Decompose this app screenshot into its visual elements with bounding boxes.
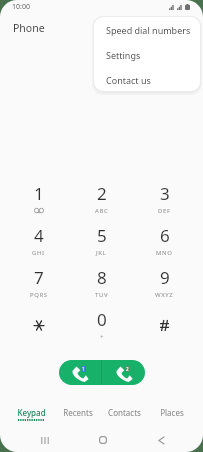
staticText: 2 [97, 182, 107, 205]
button[interactable]: Recent apps [16, 431, 74, 449]
staticText: WXYZ [155, 291, 174, 299]
staticText: ABC [95, 207, 109, 215]
staticText: Phone [13, 21, 45, 35]
button[interactable]: Home [74, 431, 132, 449]
button[interactable] [7, 308, 70, 350]
staticText: MNO [156, 249, 173, 257]
staticText: 10:00 [12, 2, 30, 12]
button[interactable]: 2 [70, 182, 133, 224]
staticText: 9 [160, 266, 170, 289]
staticText: 1 [34, 182, 44, 205]
staticText: Settings [106, 49, 141, 61]
staticText: Places [160, 407, 184, 418]
button[interactable]: Settings [94, 42, 200, 67]
button[interactable]: 1 [7, 182, 70, 224]
staticText: 6 [160, 224, 170, 247]
button[interactable]: 0 [70, 308, 133, 350]
staticText: 0 [97, 308, 107, 331]
button[interactable]: Recents [54, 403, 101, 421]
staticText: + [100, 333, 105, 341]
button[interactable]: 3 [133, 182, 196, 224]
staticText: TUV [95, 291, 109, 299]
button[interactable]: Places [148, 403, 195, 421]
staticText: 5 [97, 224, 107, 247]
staticText: PQRS [30, 291, 48, 299]
staticText: Contacts [108, 407, 141, 418]
button[interactable]: Speed dial numbers [94, 17, 200, 42]
staticText: Keypad [17, 407, 46, 418]
button[interactable]: 4 [7, 224, 70, 266]
button[interactable]: Contacts [101, 403, 148, 421]
staticText: Speed dial numbers [106, 24, 191, 36]
button[interactable]: Keypad [8, 403, 54, 421]
staticText: 4 [34, 224, 44, 247]
button[interactable]: Call with SIM 1 [59, 360, 101, 385]
button[interactable]: Call with SIM 2 [102, 360, 145, 385]
staticText: Recents [63, 407, 93, 418]
staticText: 8 [97, 266, 107, 289]
staticText: 2 [126, 366, 129, 372]
staticText: Contact us [106, 74, 151, 86]
staticText: JKL [96, 249, 107, 257]
staticText: 3 [160, 182, 170, 205]
button[interactable]: 5 [70, 224, 133, 266]
button[interactable]: 7 [7, 266, 70, 308]
button[interactable]: 9 [133, 266, 196, 308]
button[interactable]: 6 [133, 224, 196, 266]
button[interactable]: 8 [70, 266, 133, 308]
button[interactable]: Contact us [94, 67, 200, 91]
staticText: 7 [34, 266, 44, 289]
staticText: 1 [82, 366, 85, 372]
button[interactable]: Back [132, 431, 190, 449]
staticText: GHI [32, 249, 45, 257]
staticText: DEF [158, 207, 171, 215]
button[interactable] [133, 308, 196, 350]
